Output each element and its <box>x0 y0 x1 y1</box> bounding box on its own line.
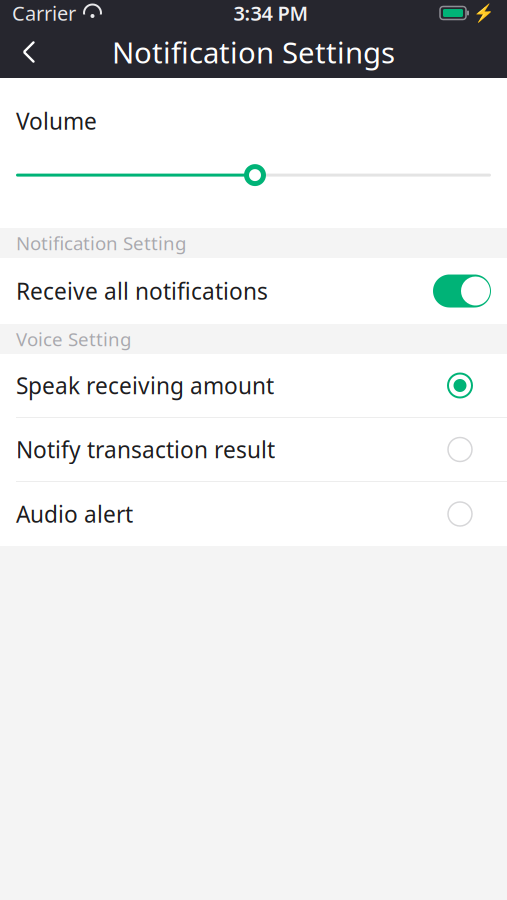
staticText: Audio alert <box>16 499 133 529</box>
button[interactable]: Back <box>0 26 58 78</box>
staticText: Voice Setting <box>16 327 131 351</box>
staticText: Speak receiving amount <box>16 370 274 400</box>
button[interactable]: Notify transaction result <box>0 418 507 482</box>
staticText: Volume <box>16 106 97 136</box>
staticText: ⚡ <box>473 3 495 23</box>
button[interactable]: Audio alert <box>0 482 507 546</box>
staticText: Notify transaction result <box>16 434 275 464</box>
button[interactable]: Receive all notifications <box>0 258 507 324</box>
staticText: Notification Setting <box>16 231 186 255</box>
staticText: 3:34 PM <box>233 0 308 26</box>
staticText: Receive all notifications <box>16 276 268 306</box>
button[interactable]: Speak receiving amount <box>0 354 507 418</box>
staticText: Carrier <box>12 0 76 26</box>
staticText: Notification Settings <box>112 32 395 71</box>
